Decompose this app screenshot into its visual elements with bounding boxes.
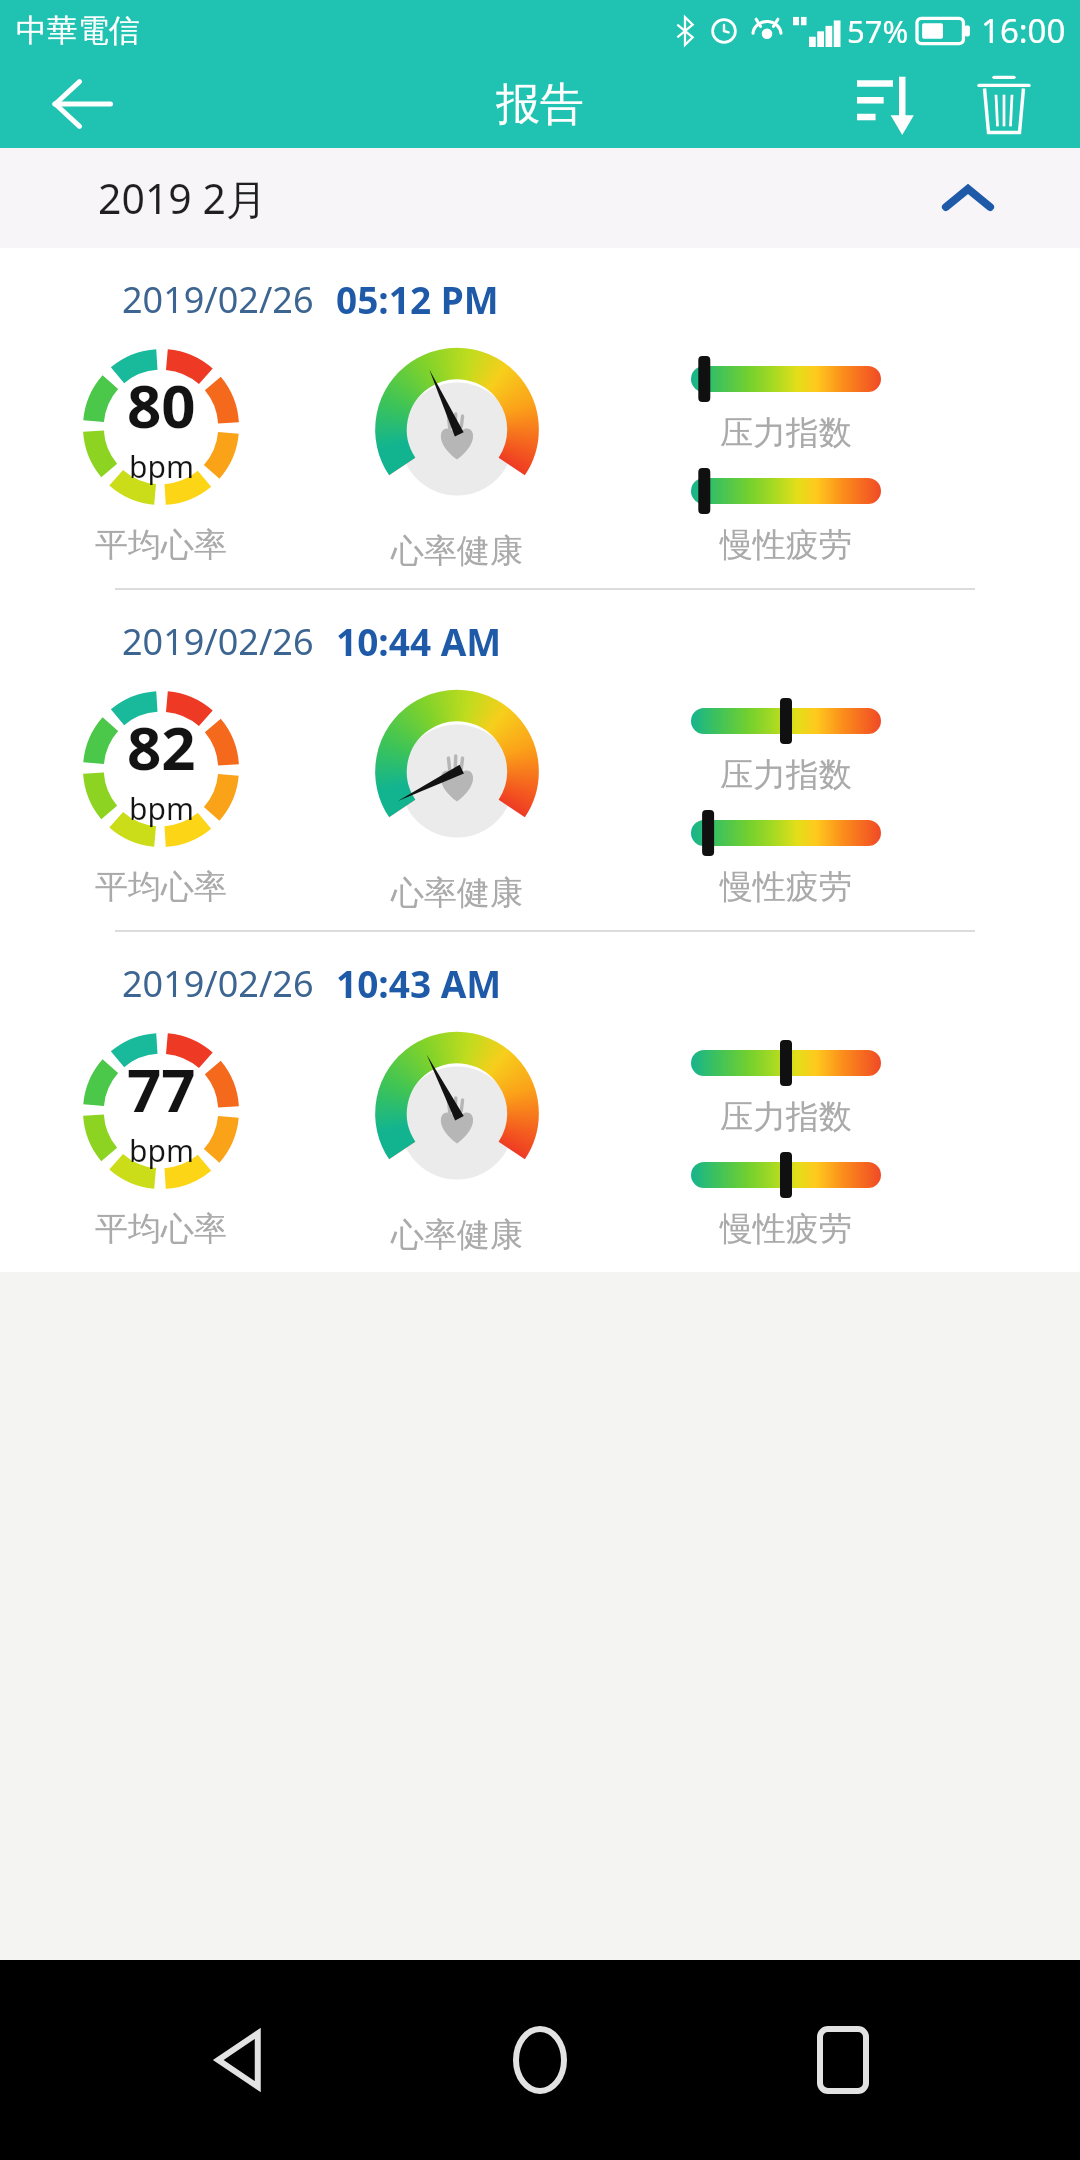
staticText: 80	[127, 364, 196, 446]
staticText: 2019/02/26	[122, 617, 314, 666]
button[interactable]: Delete	[958, 60, 1050, 148]
staticText: 压力指数	[720, 412, 852, 454]
staticText: 2019 2月	[98, 170, 267, 226]
button[interactable]: 2019/02/26	[0, 590, 1080, 930]
staticText: 16:00	[981, 8, 1066, 53]
staticText: 10:43 AM	[336, 958, 502, 1008]
staticText: 82	[127, 706, 196, 788]
staticText: 10:44 AM	[336, 616, 502, 666]
staticText: 心率健康	[391, 872, 523, 914]
button[interactable]: 2019 2月	[0, 148, 1080, 248]
staticText: 心率健康	[391, 530, 523, 572]
button[interactable]: 2019/02/26	[0, 248, 1080, 588]
staticText: bpm	[129, 1130, 194, 1171]
staticText: 压力指数	[720, 1096, 852, 1138]
staticText: bpm	[129, 446, 194, 487]
button[interactable]: Sort	[840, 60, 932, 148]
staticText: 2019/02/26	[122, 275, 314, 324]
button[interactable]: 2019/02/26	[0, 932, 1080, 1272]
staticText: 慢性疲劳	[720, 866, 852, 908]
staticText: 中華電信	[16, 11, 140, 50]
staticText: 平均心率	[95, 524, 227, 566]
staticText: bpm	[129, 788, 194, 829]
staticText: 慢性疲劳	[720, 524, 852, 566]
staticText: 平均心率	[95, 1208, 227, 1250]
staticText: 平均心率	[95, 866, 227, 908]
staticText: 心率健康	[391, 1214, 523, 1256]
staticText: 57%	[847, 10, 909, 52]
staticText: 慢性疲劳	[720, 1208, 852, 1250]
staticText: 报告	[496, 77, 584, 132]
staticText: 2019/02/26	[122, 959, 314, 1008]
staticText: 05:12 PM	[336, 274, 499, 324]
button[interactable]: Recents	[778, 1995, 908, 2125]
staticText: 77	[127, 1048, 196, 1130]
staticText: 压力指数	[720, 754, 852, 796]
button[interactable]: Back	[40, 62, 124, 146]
button[interactable]: Back	[173, 1995, 303, 2125]
button[interactable]: Home	[475, 1995, 605, 2125]
